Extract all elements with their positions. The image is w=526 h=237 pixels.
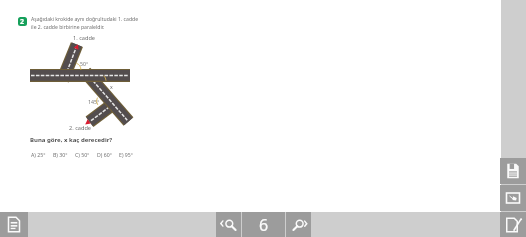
button[interactable]: Annotate (500, 212, 526, 237)
staticText: Buna göre, x kaç derecedir? (30, 136, 113, 144)
staticText: 6 (259, 214, 269, 236)
staticText: 50° (80, 60, 89, 67)
staticText: x (110, 83, 113, 90)
staticText: Aşağıdaki krokide aynı doğrultudaki 1. c… (31, 16, 139, 30)
staticText: E) 95° (119, 151, 133, 158)
staticText: 145° (88, 98, 100, 105)
staticText: 1. cadde (73, 34, 96, 42)
staticText: 2. cadde (69, 124, 92, 132)
button[interactable]: Document outline (0, 212, 28, 237)
staticText: A) 25° (31, 151, 46, 158)
button[interactable]: Insert image (500, 185, 526, 211)
staticText: D) 60° (97, 151, 112, 158)
staticText: C) 50° (75, 151, 90, 158)
button[interactable]: Zoom out (216, 212, 241, 237)
button[interactable]: Zoom in (286, 212, 311, 237)
button[interactable]: Save (500, 158, 526, 184)
button[interactable]: 6 (242, 212, 285, 237)
staticText: 2 (20, 17, 25, 26)
staticText: B) 30° (53, 151, 68, 158)
